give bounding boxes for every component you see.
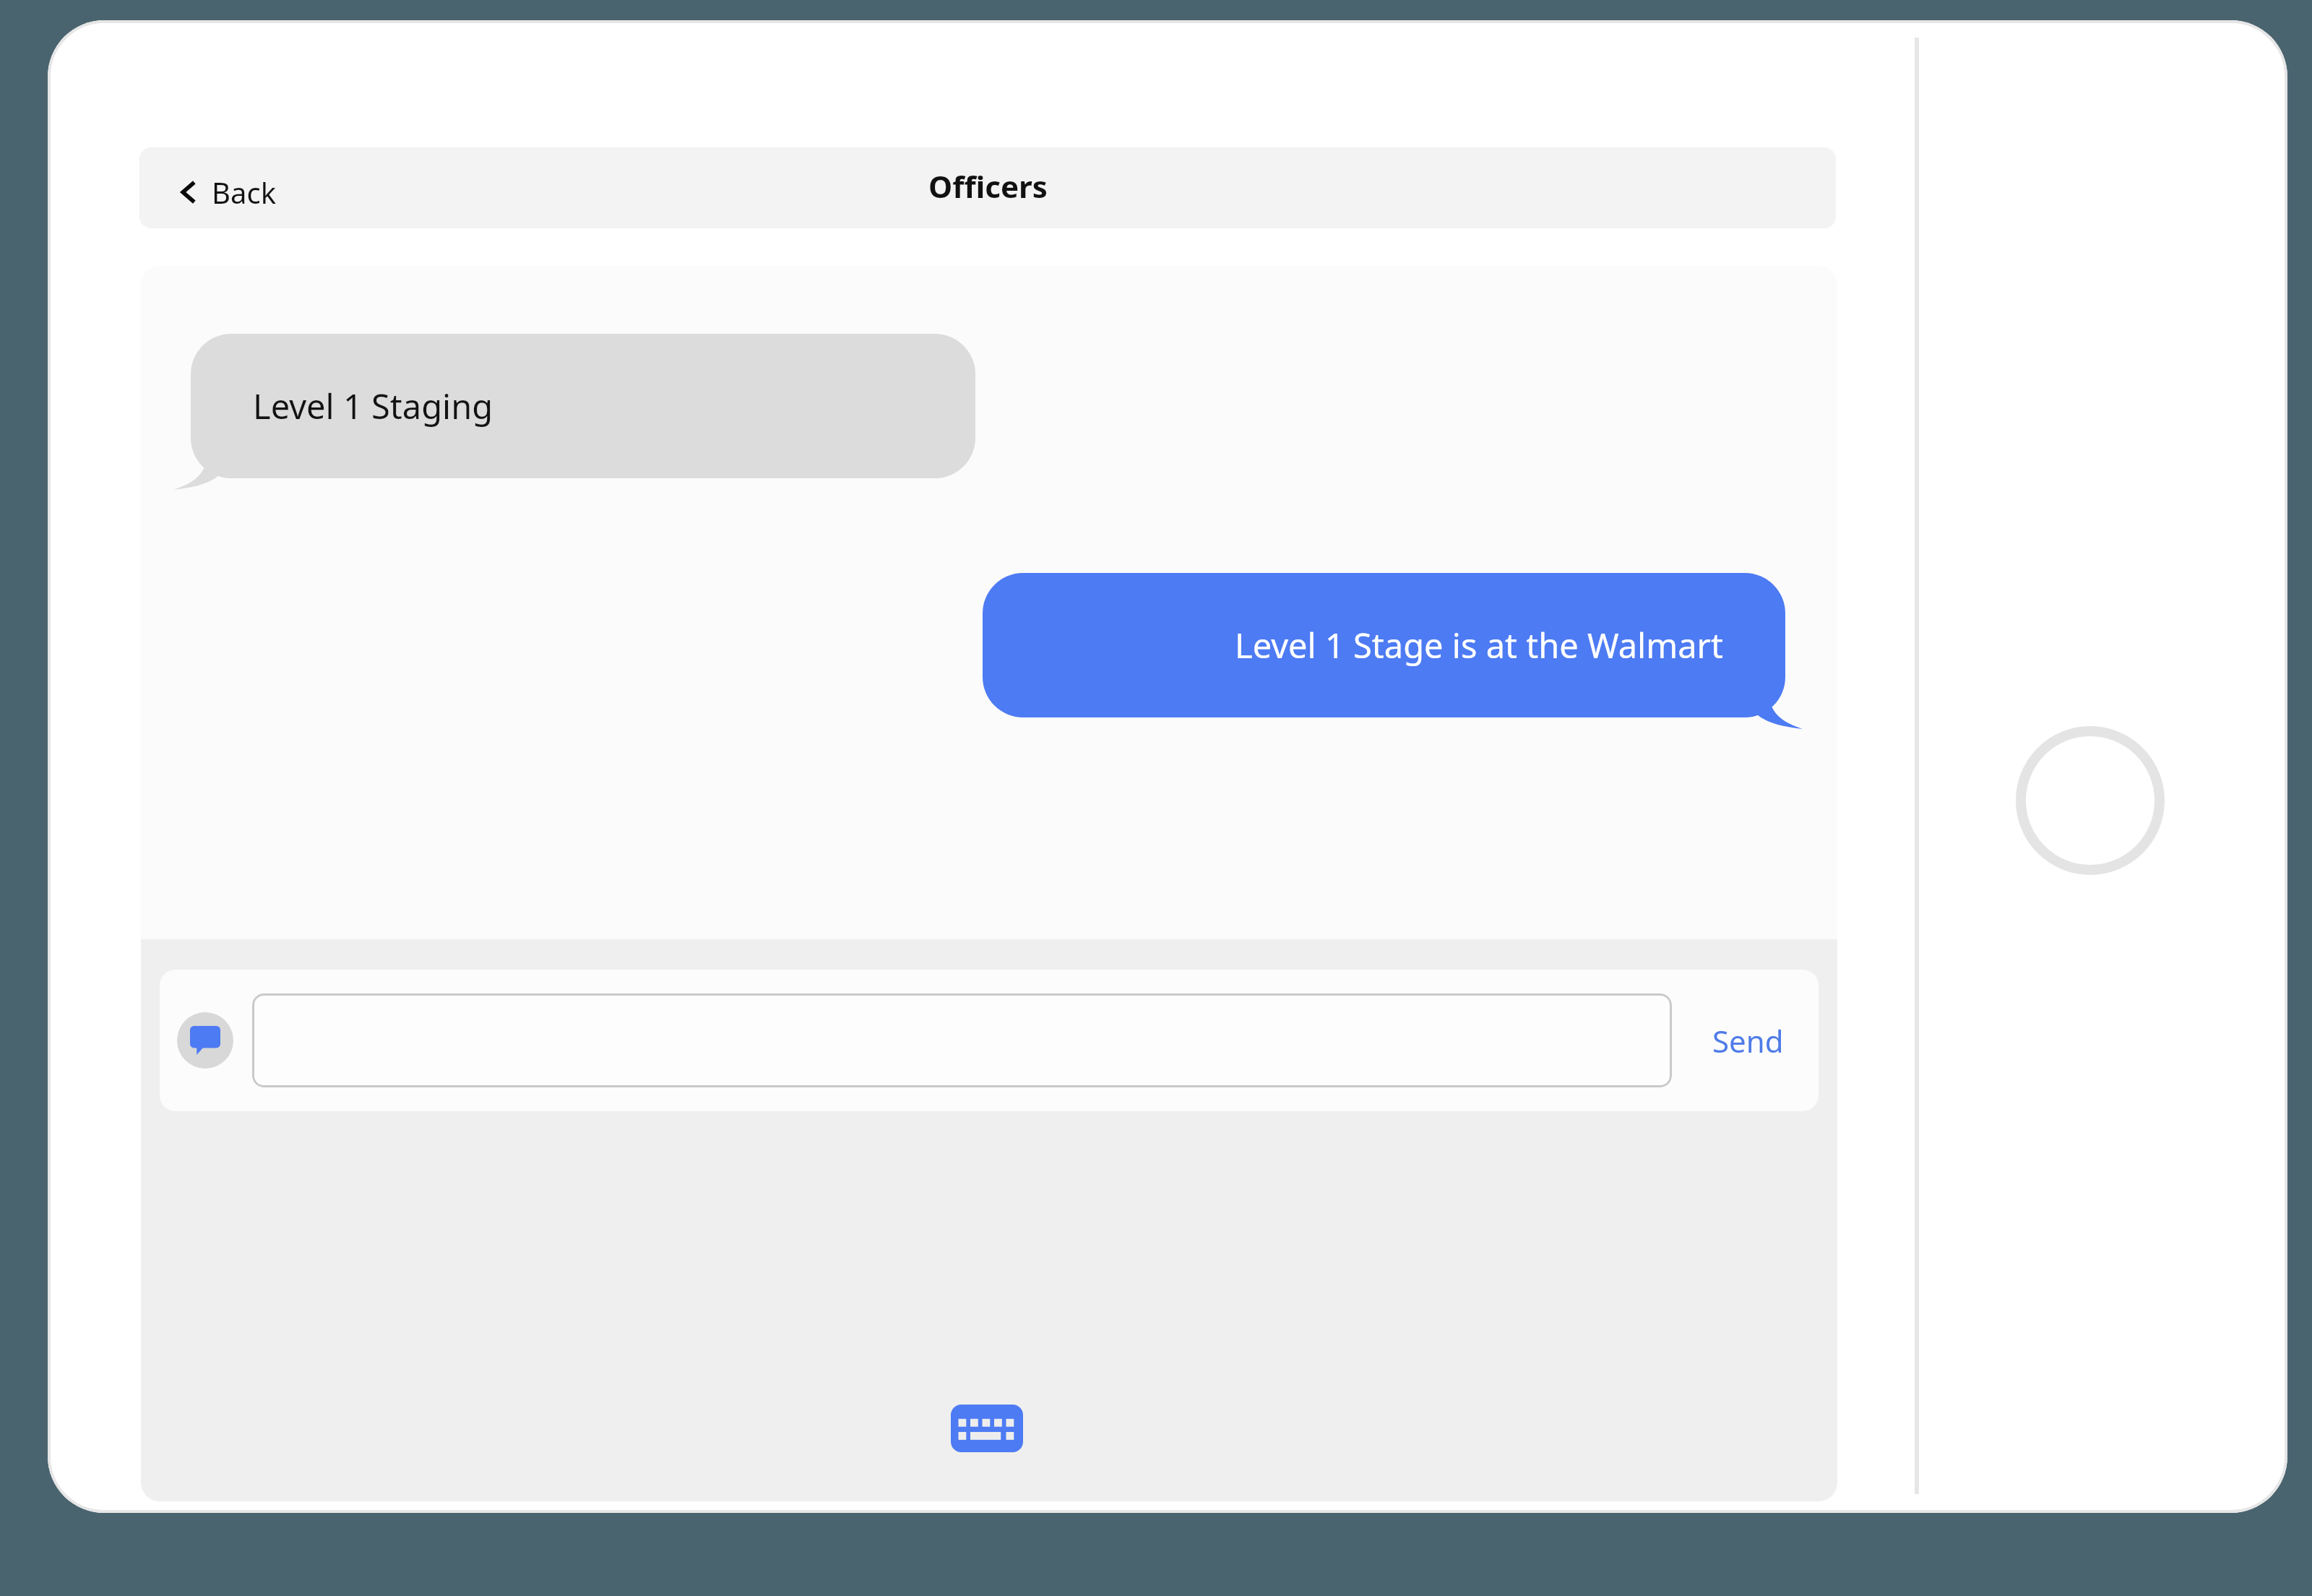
button[interactable]: Show keyboard [933, 1396, 1041, 1461]
staticText: Back [212, 173, 276, 212]
staticText: Send [1712, 1020, 1784, 1061]
button[interactable]: Home [2016, 726, 2165, 875]
staticText: Level 1 Staging [253, 383, 493, 429]
button[interactable]: Level 1 Stage is at the Walmart [983, 573, 1803, 717]
button[interactable]: Back [165, 165, 289, 219]
button[interactable] [252, 993, 1672, 1087]
staticText: Officers [928, 165, 1048, 207]
staticText: Level 1 Stage is at the Walmart [1235, 622, 1723, 668]
button[interactable]: Send [1696, 1009, 1800, 1073]
button[interactable]: Messages [177, 1012, 233, 1069]
button[interactable]: Level 1 Staging [173, 334, 975, 478]
